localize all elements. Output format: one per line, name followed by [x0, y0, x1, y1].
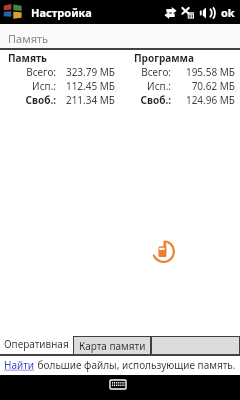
staticText: Память: [8, 31, 49, 46]
staticText: Исп.:: [0, 79, 56, 93]
staticText: 195.58 МБ: [122, 65, 235, 79]
button[interactable]: Оперативная: [0, 331, 73, 354]
button[interactable]: Volume: [199, 6, 213, 20]
staticText: ok: [221, 5, 235, 20]
staticText: 124.96 МБ: [122, 93, 235, 107]
staticText: Своб.:: [122, 93, 171, 107]
button[interactable]: No signal: [181, 6, 195, 20]
staticText: Карта памяти: [79, 339, 146, 353]
staticText: Исп.:: [122, 79, 171, 93]
staticText: Настройка: [31, 5, 92, 20]
staticText: Память: [8, 51, 47, 65]
button[interactable]: Карта памяти: [74, 337, 150, 354]
button[interactable]: Найти: [4, 358, 35, 372]
button[interactable]: Connectivity: [164, 6, 177, 20]
staticText: Оперативная: [4, 337, 69, 351]
staticText: Всего:: [122, 65, 171, 79]
button[interactable]: Keyboard: [110, 380, 126, 389]
staticText: 211.34 МБ: [0, 93, 115, 107]
staticText: Всего:: [0, 65, 56, 79]
staticText: 112.45 МБ: [0, 79, 115, 93]
staticText: Своб.:: [0, 93, 56, 107]
button[interactable]: ok: [218, 3, 238, 22]
staticText: Программа: [134, 51, 194, 65]
staticText: 70.62 МБ: [122, 79, 235, 93]
staticText: 323.79 МБ: [0, 65, 115, 79]
button[interactable]: Start menu: [3, 3, 22, 19]
staticText: большие файлы, использующие память.: [35, 358, 236, 372]
